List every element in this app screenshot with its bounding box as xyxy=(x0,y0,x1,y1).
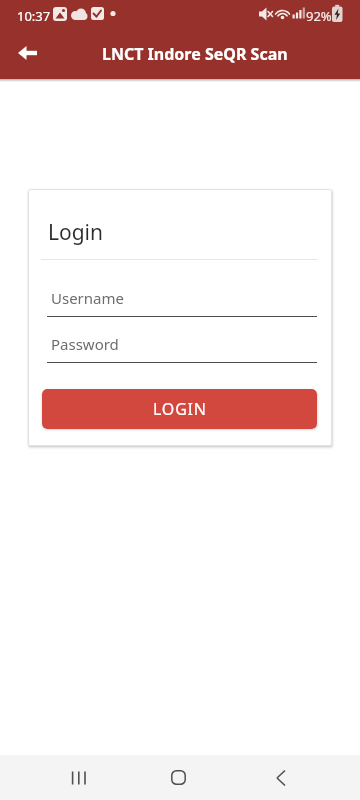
button[interactable]: Password xyxy=(47,330,317,363)
staticText: LOGIN xyxy=(153,398,207,420)
staticText: Password xyxy=(51,334,119,354)
button[interactable] xyxy=(10,35,46,71)
button[interactable] xyxy=(257,755,305,800)
staticText: Username xyxy=(51,288,124,308)
button[interactable]: Username xyxy=(47,284,317,317)
button[interactable]: LOGIN xyxy=(42,389,317,429)
staticText: Login xyxy=(48,218,104,247)
staticText: 10:37 xyxy=(17,7,51,25)
button[interactable] xyxy=(55,755,103,800)
button[interactable] xyxy=(154,755,202,800)
staticText: 92% xyxy=(306,7,332,25)
staticText: LNCT Indore SeQR Scan xyxy=(102,43,288,65)
